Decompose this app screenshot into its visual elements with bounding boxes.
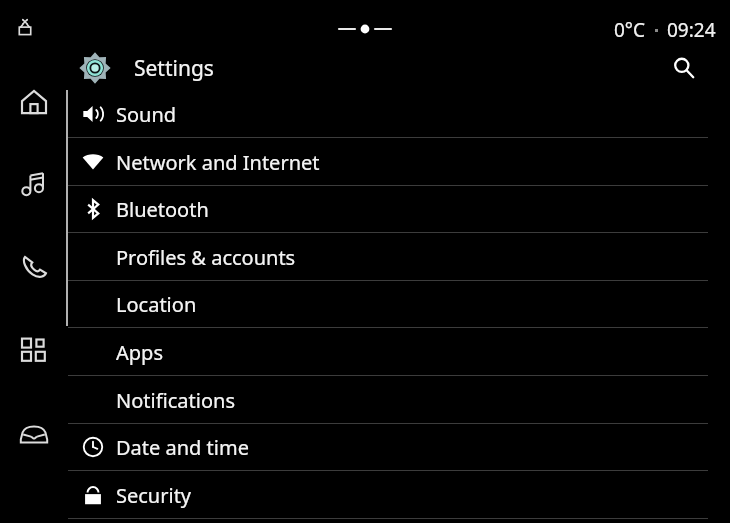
- button[interactable]: Vehicle: [10, 409, 58, 457]
- staticText: Profiles & accounts: [116, 244, 296, 271]
- button[interactable]: Search: [662, 46, 706, 90]
- staticText: Settings: [134, 54, 214, 83]
- button[interactable]: Network and Internet: [68, 138, 730, 186]
- staticText: Date and time: [116, 434, 249, 461]
- staticText: Security: [116, 482, 192, 509]
- button[interactable]: Home: [10, 78, 58, 126]
- button[interactable]: Apps: [10, 326, 58, 374]
- staticText: Location: [116, 291, 197, 318]
- staticText: Bluetooth: [116, 196, 209, 223]
- staticText: Sound: [116, 101, 177, 128]
- button[interactable]: Sound: [68, 90, 730, 138]
- button[interactable]: Security: [68, 471, 730, 519]
- button[interactable]: Bluetooth: [68, 185, 730, 233]
- staticText: Apps: [116, 339, 163, 366]
- button[interactable]: Location: [68, 280, 730, 328]
- button[interactable]: Apps: [68, 328, 730, 376]
- button[interactable]: Profiles & accounts: [68, 233, 730, 281]
- staticText: Network and Internet: [116, 149, 320, 176]
- button[interactable]: Vehicle status: [10, 13, 40, 43]
- staticText: 09:24: [667, 17, 716, 43]
- button[interactable]: Phone: [10, 242, 58, 290]
- button[interactable]: Media: [10, 160, 58, 208]
- staticText: 0°C: [614, 17, 646, 43]
- button[interactable]: Notifications: [68, 376, 730, 424]
- button[interactable]: Date and time: [68, 423, 730, 471]
- staticText: Notifications: [116, 387, 235, 414]
